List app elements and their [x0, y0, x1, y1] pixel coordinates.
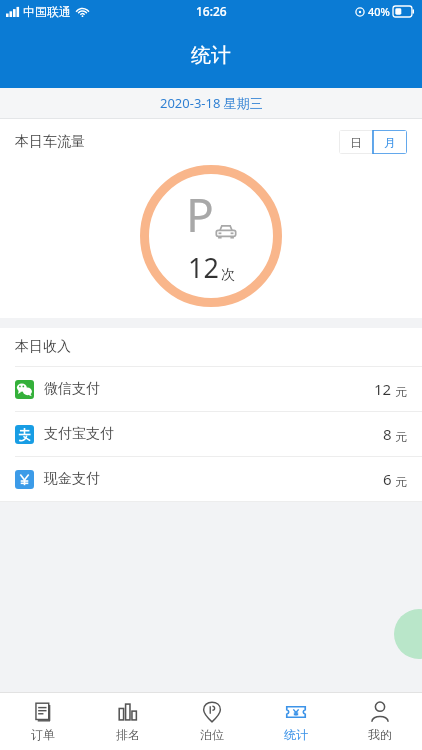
button[interactable]: 2020-3-18 星期三: [0, 88, 422, 118]
button[interactable]: 统计: [254, 693, 338, 750]
staticText: 元: [395, 384, 407, 399]
staticText: 排名: [116, 727, 140, 742]
staticText: 元: [395, 429, 407, 444]
button[interactable]: 微信支付: [0, 367, 422, 411]
button[interactable]: 我的: [338, 693, 422, 750]
staticText: 统计: [191, 43, 231, 68]
staticText: 40%: [368, 4, 390, 19]
staticText: 现金支付: [44, 470, 100, 488]
staticText: 日: [350, 135, 362, 150]
staticText: 本日车流量: [15, 133, 85, 151]
button[interactable]: 月: [373, 130, 407, 154]
staticText: 12: [374, 379, 392, 399]
staticText: 微信支付: [44, 380, 100, 398]
staticText: 元: [395, 474, 407, 489]
staticText: 中国联通: [23, 4, 71, 19]
button[interactable]: 现金支付: [0, 457, 422, 501]
button[interactable]: 支付宝支付: [0, 412, 422, 456]
staticText: 统计: [284, 727, 308, 742]
button[interactable]: 订单: [0, 693, 85, 750]
staticText: 我的: [368, 727, 392, 742]
button[interactable]: 排名: [85, 693, 170, 750]
staticText: 本日收入: [15, 338, 71, 356]
staticText: 6: [383, 469, 392, 489]
staticText: 次: [221, 266, 235, 284]
button[interactable]: Add: [394, 609, 422, 659]
staticText: 订单: [31, 727, 55, 742]
staticText: 支付宝支付: [44, 425, 114, 443]
staticText: P: [186, 183, 214, 246]
staticText: 泊位: [200, 727, 224, 742]
button[interactable]: 日: [339, 130, 373, 154]
staticText: 12: [188, 249, 219, 286]
staticText: 16:26: [196, 3, 227, 19]
staticText: 8: [383, 424, 392, 444]
button[interactable]: 泊位: [170, 693, 254, 750]
staticText: 2020-3-18 星期三: [160, 94, 263, 112]
staticText: 月: [384, 135, 396, 150]
